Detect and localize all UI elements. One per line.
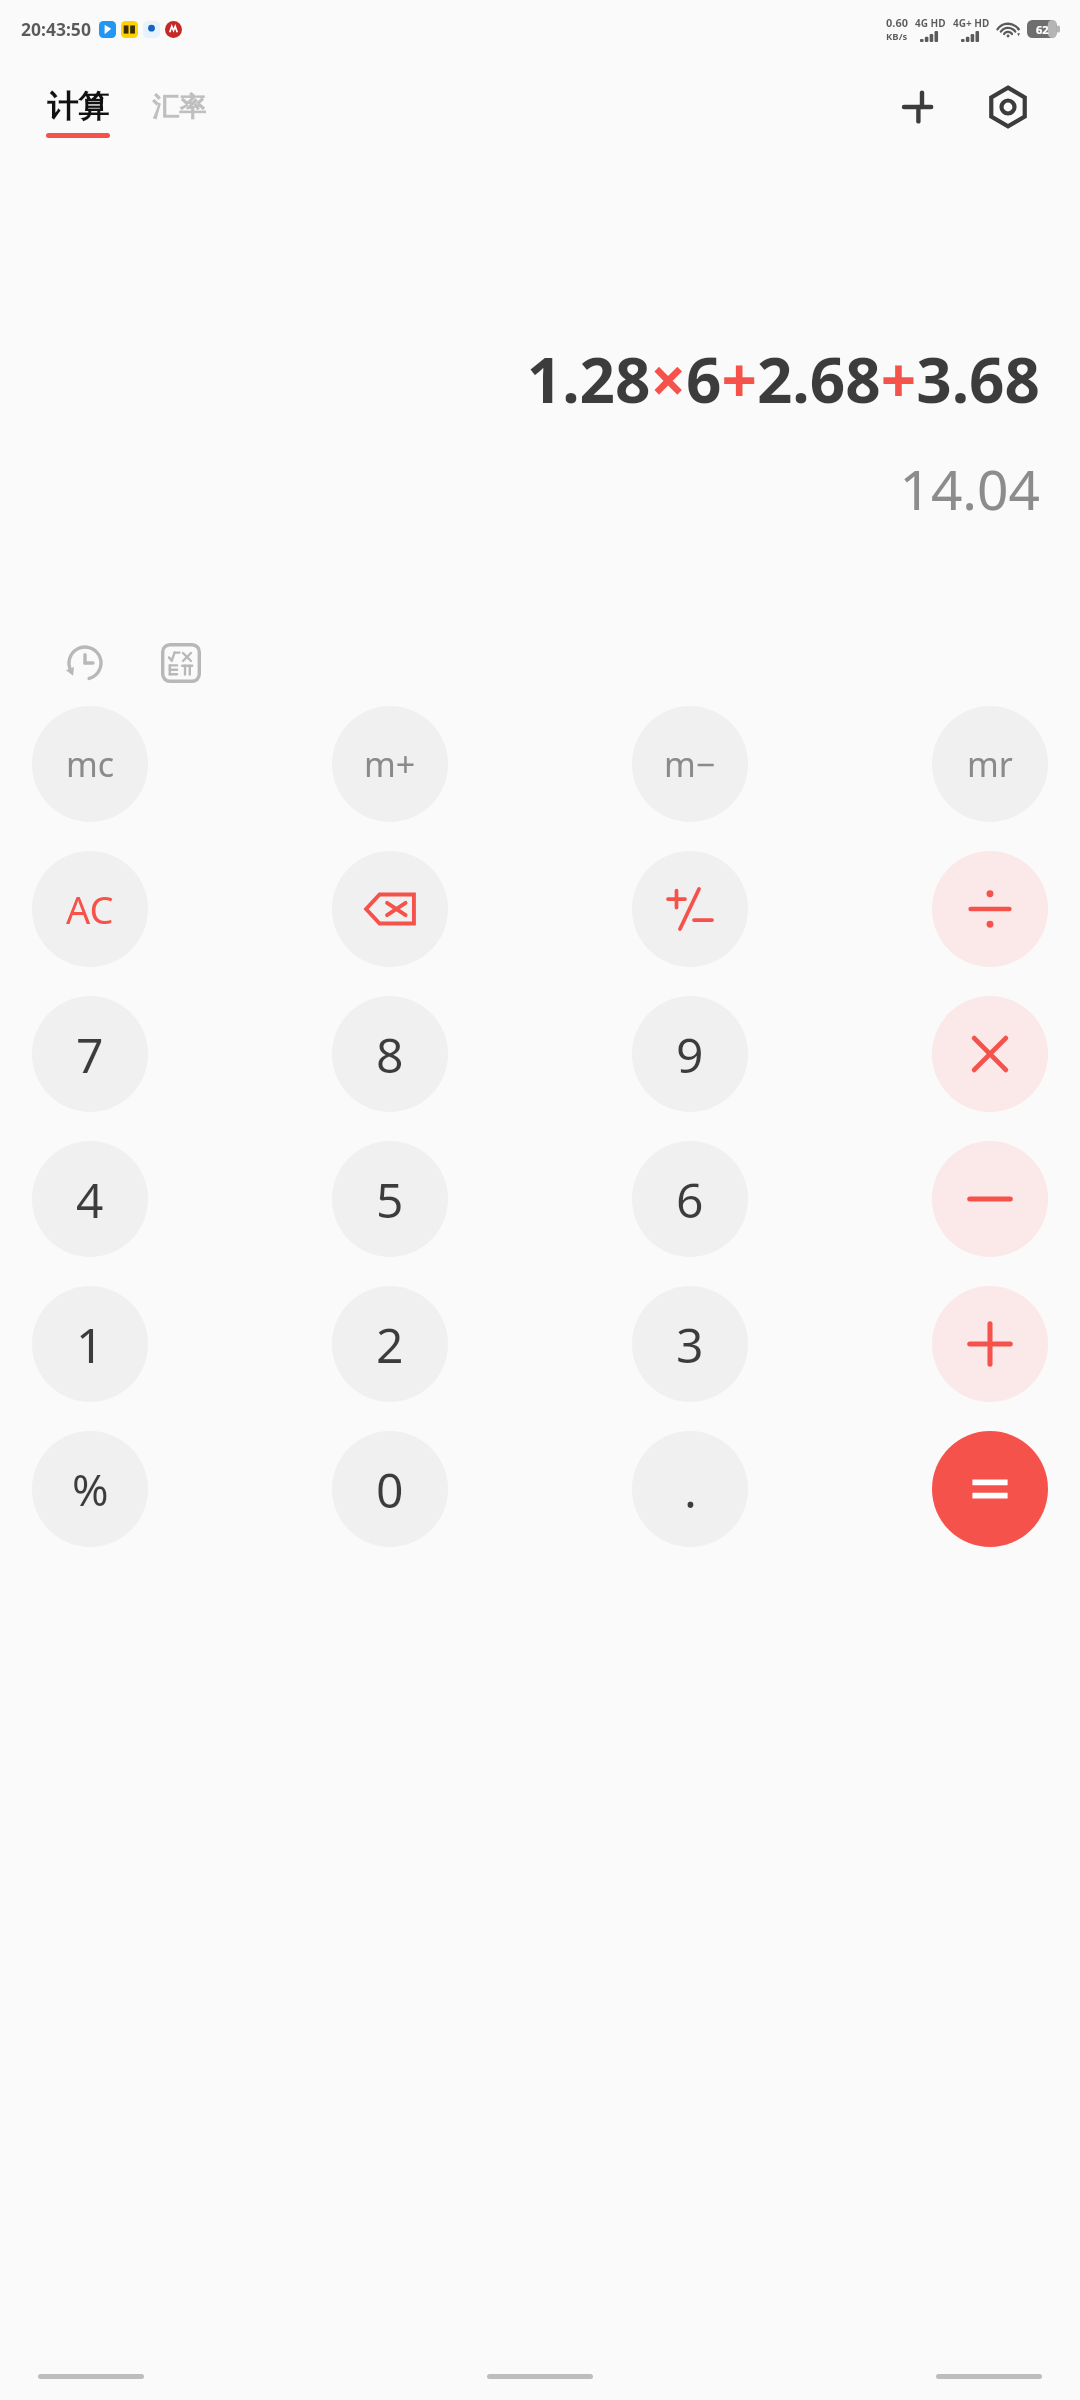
button[interactable]: Divide [932, 851, 1048, 967]
staticText: 8 [376, 1022, 404, 1087]
staticText: 汇率 [152, 90, 206, 124]
button[interactable]: 6 [632, 1141, 748, 1257]
button[interactable]: Plus minus [632, 851, 748, 967]
staticText: m+ [364, 741, 416, 787]
button[interactable]: Plus [932, 1286, 1048, 1402]
button[interactable]: AC [32, 851, 148, 967]
staticText: % [72, 1459, 109, 1519]
button[interactable]: 汇率 [152, 90, 206, 136]
staticText: AC [66, 883, 114, 935]
button[interactable]: History [56, 634, 114, 692]
button[interactable]: m− [632, 706, 748, 822]
button[interactable]: mr [932, 706, 1048, 822]
staticText: 4G+ HD [953, 16, 990, 30]
button[interactable]: 8 [332, 996, 448, 1112]
button[interactable]: . [632, 1431, 748, 1547]
staticText: 2 [376, 1312, 404, 1377]
button[interactable]: Backspace [332, 851, 448, 967]
button[interactable]: % [32, 1431, 148, 1547]
button[interactable]: 0 [332, 1431, 448, 1547]
button[interactable]: 计算 [46, 87, 110, 138]
button[interactable]: 1 [32, 1286, 148, 1402]
staticText: 9 [676, 1022, 704, 1087]
staticText: mc [66, 741, 115, 787]
button[interactable]: Scientific mode [152, 634, 210, 692]
staticText: 4 [76, 1167, 104, 1232]
staticText: 14.04 [40, 451, 1040, 526]
button[interactable]: 9 [632, 996, 748, 1112]
button[interactable]: m+ [332, 706, 448, 822]
staticText: mr [967, 741, 1013, 787]
button[interactable]: Unit conversion [890, 77, 950, 137]
staticText: 7 [76, 1022, 104, 1087]
staticText: 3 [676, 1312, 704, 1377]
button[interactable]: mc [32, 706, 148, 822]
staticText: 4G HD [915, 16, 946, 30]
button[interactable]: Multiply [932, 996, 1048, 1112]
staticText: 6 [676, 1167, 704, 1232]
button[interactable]: 3 [632, 1286, 748, 1402]
staticText: 5 [376, 1167, 404, 1232]
staticText: KB/s [886, 30, 908, 43]
staticText: 计算 [47, 87, 109, 126]
button[interactable]: Equals [932, 1431, 1048, 1547]
staticText: 62 [1036, 22, 1049, 37]
button[interactable]: Minus [932, 1141, 1048, 1257]
button[interactable]: Settings [978, 77, 1038, 137]
staticText: m− [664, 741, 716, 787]
button[interactable]: 5 [332, 1141, 448, 1257]
staticText: 1 [76, 1312, 104, 1377]
button[interactable]: 2 [332, 1286, 448, 1402]
staticText: . [684, 1457, 697, 1522]
staticText: 1.28×6+2.68+3.68 [40, 337, 1040, 421]
button[interactable]: 4 [32, 1141, 148, 1257]
button[interactable]: 7 [32, 996, 148, 1112]
staticText: 0 [376, 1457, 404, 1522]
staticText: 0.60 [886, 15, 908, 30]
staticText: 20:43:50 [21, 17, 91, 41]
